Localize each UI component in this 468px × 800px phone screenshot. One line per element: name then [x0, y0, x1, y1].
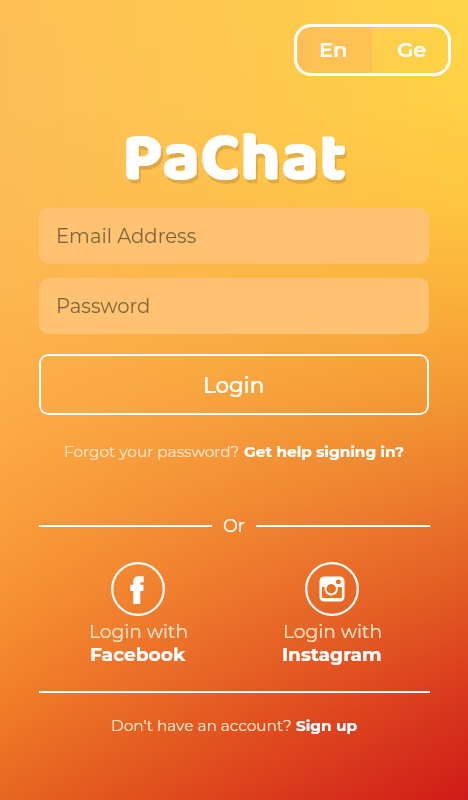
button[interactable]: Ge — [372, 24, 451, 76]
staticText: Password — [56, 294, 151, 318]
button[interactable]: En — [294, 24, 372, 76]
button[interactable]: Login with Instagram — [235, 562, 429, 666]
staticText: Login with — [283, 620, 382, 643]
staticText: Facebook — [90, 643, 186, 666]
button[interactable]: Login — [39, 354, 429, 415]
button[interactable]: Password — [39, 278, 429, 334]
staticText: Email Address — [56, 224, 197, 248]
staticText: Get help signing in? — [244, 442, 404, 461]
staticText: En — [319, 37, 348, 63]
staticText: Forgot your password? — [64, 442, 244, 461]
button[interactable]: Login with Facebook — [41, 562, 235, 666]
staticText: Ge — [397, 37, 427, 63]
staticText: Don't have an account? — [111, 716, 296, 735]
staticText: Or — [223, 515, 245, 537]
staticText: Login — [203, 372, 265, 398]
button[interactable]: Forgot your password? — [64, 442, 244, 461]
staticText: PaChat — [124, 108, 349, 220]
button[interactable]: Don't have an account? — [111, 716, 296, 735]
staticText: Instagram — [282, 643, 382, 666]
button[interactable]: Sign up — [296, 716, 358, 735]
button[interactable]: Get help signing in? — [244, 442, 404, 461]
staticText: Sign up — [296, 716, 358, 735]
staticText: Login with — [89, 620, 188, 643]
staticText: PaChat — [122, 104, 347, 216]
button[interactable]: Email Address — [39, 208, 429, 264]
